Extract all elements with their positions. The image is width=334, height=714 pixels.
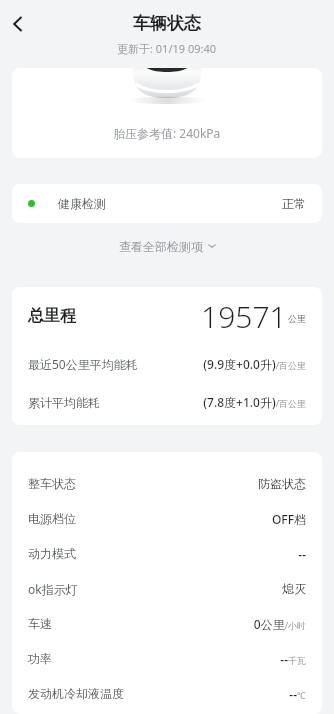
button[interactable]: 发动机冷却液温度 — [12, 676, 322, 711]
button[interactable]: 查看全部检测项 — [0, 233, 334, 259]
staticText: (7.8度+1.0升)/百公里 — [203, 394, 306, 410]
staticText: 累计平均能耗 — [28, 395, 100, 410]
staticText: 总里程 — [28, 306, 76, 326]
staticText: 功率 — [28, 651, 52, 666]
staticText: 公里 — [288, 313, 306, 324]
button[interactable]: 功率 — [12, 641, 322, 676]
staticText: 发动机冷却液温度 — [28, 686, 124, 701]
staticText: 整车状态 — [28, 476, 76, 491]
staticText: ok指示灯 — [28, 581, 78, 597]
staticText: -- — [298, 546, 306, 562]
button[interactable]: Back — [4, 10, 32, 38]
button[interactable]: 车速 — [12, 606, 322, 641]
staticText: (9.9度+0.0升)/百公里 — [203, 356, 306, 372]
staticText: 动力模式 — [28, 546, 76, 561]
staticText: 车辆状态 — [133, 13, 201, 34]
staticText: 最近50公里平均能耗 — [28, 356, 138, 372]
staticText: 车速 — [28, 616, 52, 631]
button[interactable]: 电源档位 — [12, 501, 322, 536]
staticText: 查看全部检测项 — [119, 239, 203, 254]
button[interactable]: ok指示灯 — [12, 571, 322, 606]
staticText: --千瓦 — [280, 651, 306, 667]
staticText: 熄灭 — [282, 581, 306, 596]
staticText: 电源档位 — [28, 511, 76, 526]
button[interactable]: 动力模式 — [12, 536, 322, 571]
staticText: --℃ — [289, 686, 306, 702]
staticText: 更新于: 01/19 09:40 — [117, 41, 217, 56]
button[interactable]: 整车状态 — [12, 466, 322, 501]
staticText: 胎压参考值: 240kPa — [113, 125, 221, 141]
staticText: 防盗状态 — [258, 476, 306, 491]
staticText: 正常 — [282, 196, 306, 211]
staticText: OFF档 — [271, 511, 306, 527]
staticText: 健康检测 — [58, 196, 106, 211]
staticText: 0公里/小时 — [253, 616, 306, 632]
staticText: 19571 — [201, 296, 287, 337]
button[interactable]: 健康检测 — [12, 184, 322, 223]
